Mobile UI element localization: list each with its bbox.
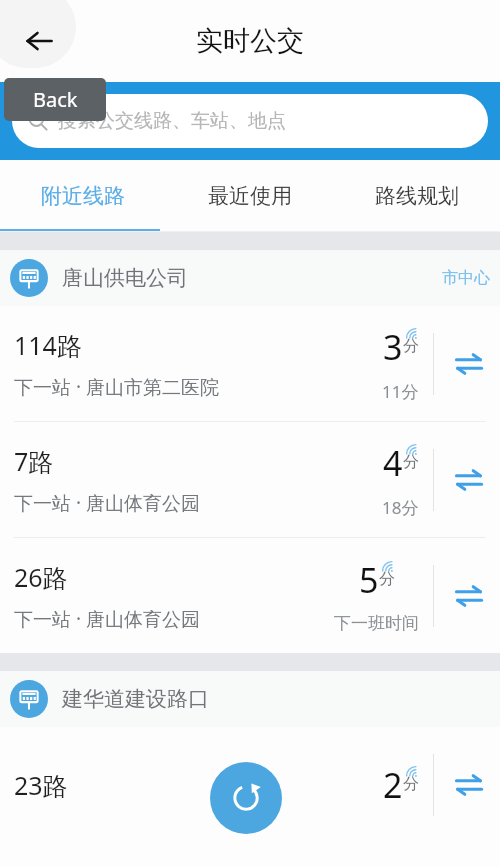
staticText: 下一站 · 唐山体育公园: [14, 490, 200, 516]
button[interactable]: 建华道建设路口: [0, 671, 500, 727]
button[interactable]: Switch direction: [446, 457, 492, 503]
staticText: 下一班时间: [334, 613, 419, 634]
button[interactable]: Back: [8, 10, 70, 72]
staticText: 实时公交: [0, 24, 500, 58]
staticText: 搜索公交线路、车站、地点: [58, 109, 286, 133]
button[interactable]: 附近线路: [0, 160, 166, 232]
button[interactable]: 最近使用: [166, 160, 333, 232]
staticText: 最近使用: [208, 183, 292, 209]
staticText: 建华道建设路口: [62, 686, 209, 712]
button[interactable]: Switch direction: [446, 573, 492, 619]
button[interactable]: 路线规划: [333, 160, 500, 232]
staticText: 唐山供电公司: [62, 265, 188, 291]
staticText: 分: [379, 569, 395, 589]
staticText: 市中心: [442, 268, 490, 288]
button[interactable]: 7路: [0, 422, 500, 537]
staticText: 下一站 · 唐山市第二医院: [14, 374, 219, 400]
staticText: 18分: [382, 496, 419, 519]
button[interactable]: Refresh: [210, 762, 282, 834]
button[interactable]: 唐山供电公司: [0, 250, 500, 306]
staticText: 26路: [14, 560, 68, 594]
staticText: 2: [383, 762, 403, 808]
staticText: Back: [33, 86, 78, 113]
button[interactable]: Switch direction: [446, 762, 492, 808]
staticText: 4: [383, 440, 403, 486]
staticText: 3: [383, 324, 403, 370]
button[interactable]: 搜索公交线路、车站、地点: [12, 94, 488, 148]
staticText: 114路: [14, 328, 82, 362]
button[interactable]: 26路: [0, 538, 500, 653]
staticText: 5: [359, 557, 379, 603]
staticText: 下一站 · 唐山体育公园: [14, 606, 200, 632]
button[interactable]: Switch direction: [446, 341, 492, 387]
staticText: 附近线路: [41, 183, 125, 209]
button[interactable]: 114路: [0, 306, 500, 421]
staticText: 分: [403, 336, 419, 356]
staticText: 7路: [14, 444, 54, 478]
staticText: 23路: [14, 768, 68, 802]
staticText: 11分: [382, 380, 419, 403]
button[interactable]: 23路: [0, 727, 500, 842]
staticText: 分: [403, 774, 419, 794]
staticText: 路线规划: [375, 183, 459, 209]
staticText: 分: [403, 452, 419, 472]
